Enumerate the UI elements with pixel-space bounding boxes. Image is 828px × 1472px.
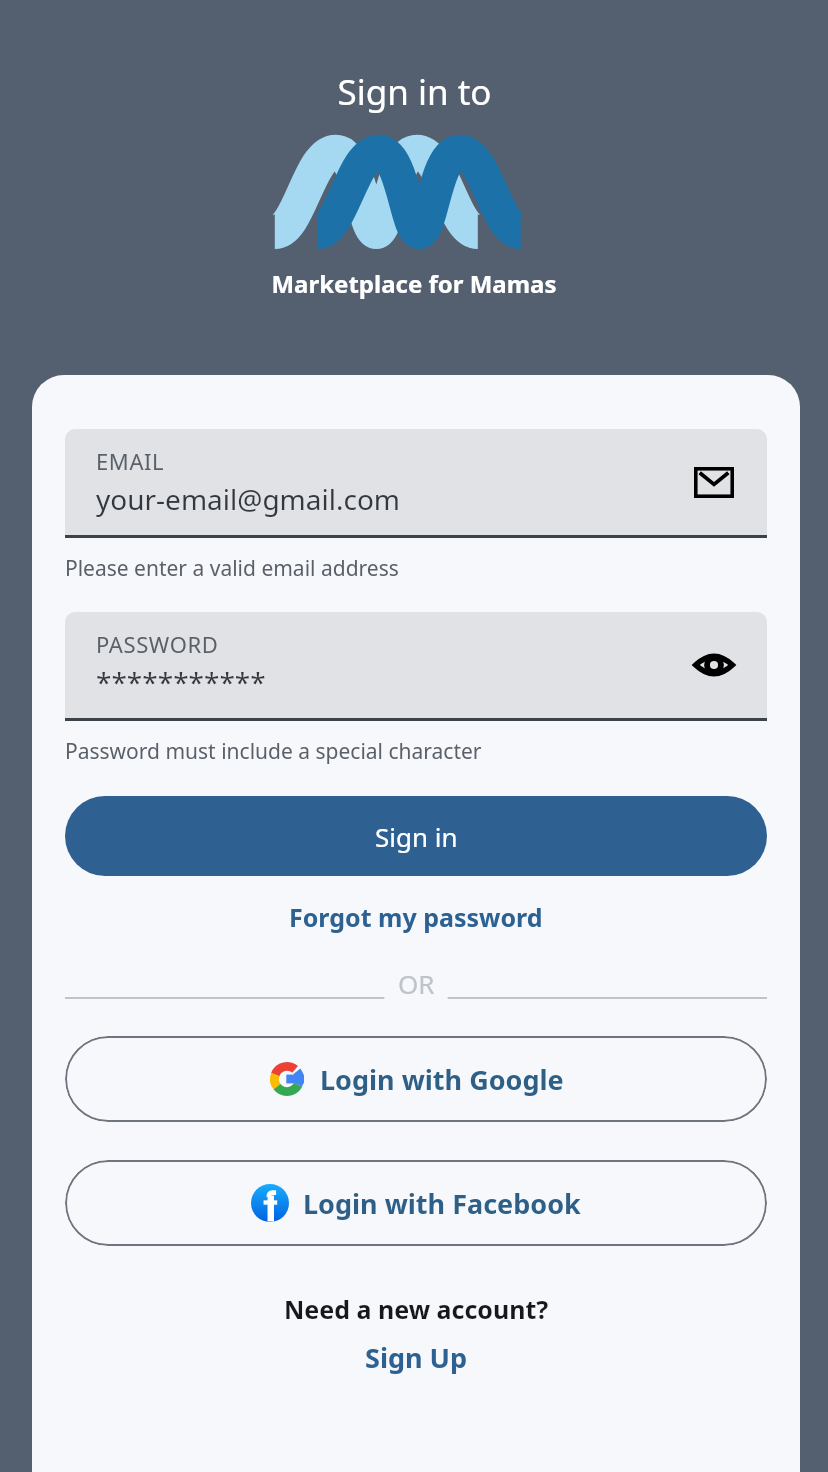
button[interactable]: PASSWORD (65, 612, 767, 721)
staticText: Login with Google (320, 1061, 564, 1098)
staticText: Forgot my password (289, 900, 543, 934)
button[interactable]: Sign Up (65, 1332, 767, 1382)
button[interactable]: Login with Facebook (65, 1160, 767, 1246)
staticText: Password must include a special characte… (65, 737, 482, 766)
button[interactable]: Forgot my password (65, 886, 767, 948)
staticText: your-email@gmail.com (96, 480, 401, 518)
button[interactable]: Email (691, 459, 737, 505)
staticText: Sign Up (365, 1339, 468, 1376)
button[interactable]: Sign in (65, 796, 767, 876)
button[interactable]: EMAIL (65, 429, 767, 538)
staticText: Please enter a valid email address (65, 554, 399, 583)
staticText: Need a new account? (284, 1292, 549, 1326)
button[interactable]: Show password (691, 642, 737, 688)
staticText: PASSWORD (96, 629, 219, 659)
staticText: Login with Facebook (303, 1185, 581, 1222)
staticText: OR (398, 966, 435, 1001)
staticText: *********** (96, 663, 266, 701)
staticText: Marketplace for Mamas (271, 267, 557, 300)
staticText: Sign in (375, 819, 458, 854)
staticText: Sign in to (337, 68, 492, 116)
button[interactable]: Login with Google (65, 1036, 767, 1122)
staticText: EMAIL (96, 446, 165, 476)
